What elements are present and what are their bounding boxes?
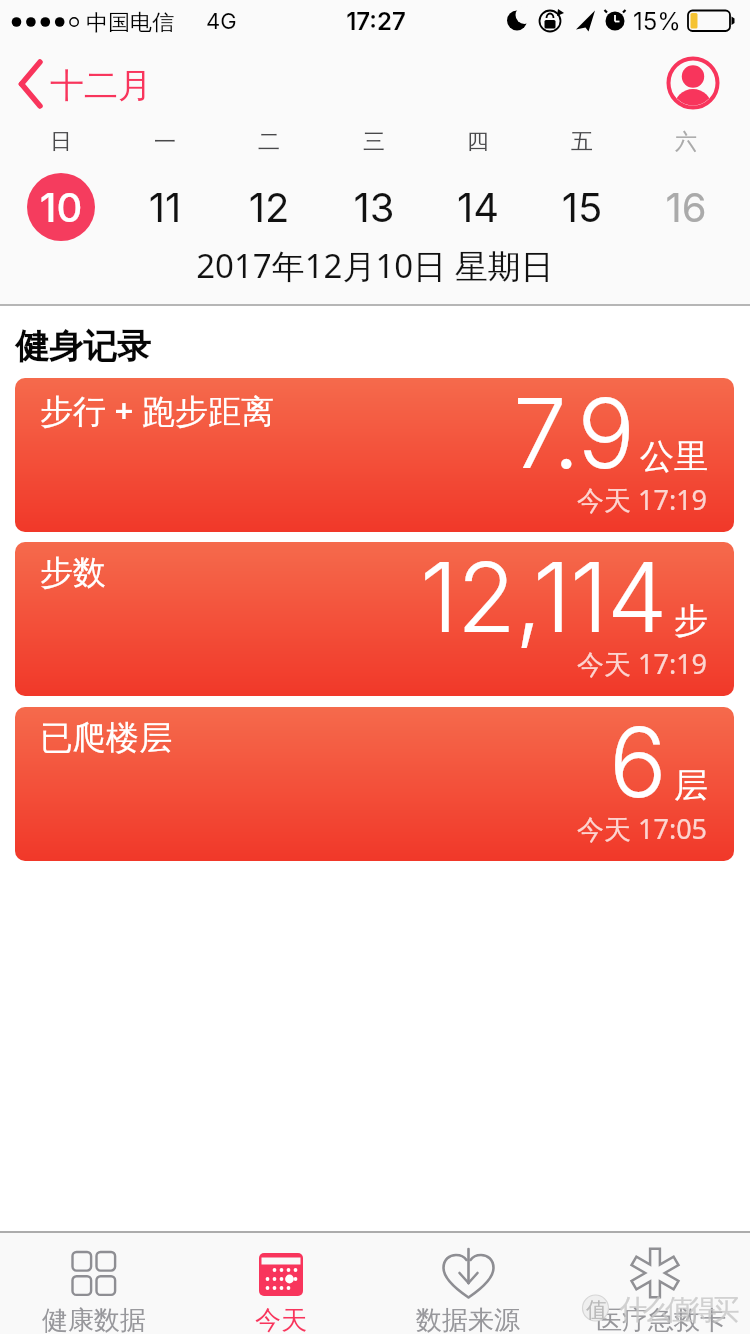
staticText: 医疗急救卡 [591, 1304, 731, 1334]
button[interactable] [375, 1232, 562, 1334]
staticText: 健康数据 [42, 1304, 146, 1334]
staticText: 步 [674, 599, 708, 642]
staticText: 层 [674, 764, 708, 807]
staticText: 2017年12月10日 星期日 [0, 243, 750, 288]
button[interactable] [563, 1232, 750, 1334]
staticText: 五 [530, 128, 634, 156]
staticText: 今天 [229, 1304, 333, 1334]
button[interactable] [27, 173, 95, 241]
staticText: 数据来源 [416, 1304, 520, 1334]
staticText: 10 [9, 183, 113, 231]
staticText: 三 [322, 128, 426, 156]
staticText: 17:27 [316, 7, 436, 36]
staticText: 4G [206, 8, 237, 35]
staticText: 15 [530, 183, 634, 231]
staticText: 13 [322, 183, 426, 231]
staticText: 今天 17:19 [577, 481, 708, 518]
staticText: 什么值得买 [622, 1292, 737, 1327]
button[interactable]: 步行 + 跑步距离 [15, 378, 734, 532]
staticText: 14 [426, 183, 530, 231]
staticText: 值 [586, 1297, 607, 1323]
staticText: 日 [9, 128, 113, 156]
staticText: 步数 [40, 552, 106, 594]
button[interactable] [0, 1232, 187, 1334]
staticText: 12 [217, 183, 321, 231]
button[interactable]: 步数 [15, 542, 734, 696]
staticText: 11 [113, 183, 217, 231]
staticText: 公里 [640, 435, 708, 478]
button[interactable] [188, 1232, 375, 1334]
staticText: 二 [217, 128, 321, 156]
staticText: 健身记录 [15, 325, 151, 368]
staticText: 6 [609, 707, 667, 820]
staticText: 一 [113, 128, 217, 156]
staticText: 7.9 [513, 378, 633, 491]
staticText: 中国电信 [86, 9, 174, 37]
staticText: 四 [426, 128, 530, 156]
staticText: 步行 + 跑步距离 [40, 388, 275, 433]
button[interactable] [666, 56, 720, 110]
staticText: 今天 17:19 [577, 645, 708, 682]
staticText: 15% [633, 7, 681, 36]
staticText: 已爬楼层 [40, 717, 172, 759]
staticText: 六 [634, 128, 738, 156]
staticText: 今天 17:05 [577, 810, 708, 847]
button[interactable]: 已爬楼层 [15, 707, 734, 861]
staticText: 12,114 [420, 542, 667, 655]
button[interactable] [10, 55, 170, 111]
staticText: 十二月 [50, 64, 152, 107]
staticText: 16 [634, 183, 738, 231]
